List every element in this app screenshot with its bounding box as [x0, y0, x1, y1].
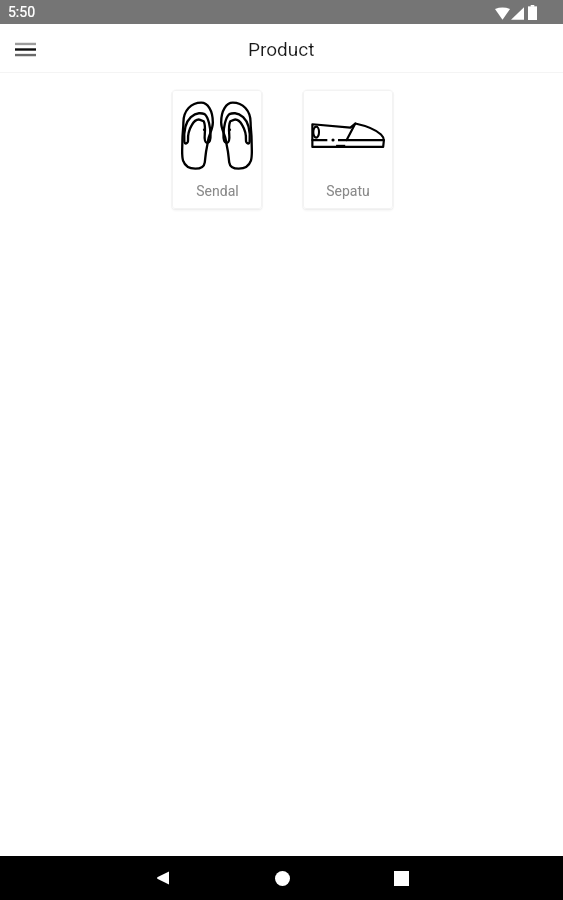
staticText: Sepatu	[326, 183, 370, 199]
staticText: 5:50	[8, 4, 35, 20]
button[interactable]: Menu	[6, 30, 44, 68]
button[interactable]: Sepatu	[303, 90, 393, 209]
button[interactable]: Recents	[379, 856, 423, 900]
button[interactable]: Sendal	[172, 90, 262, 209]
staticText: Product	[248, 38, 315, 60]
button[interactable]: Back	[140, 856, 184, 900]
staticText: Sendal	[196, 183, 239, 199]
button[interactable]: Home	[260, 856, 304, 900]
